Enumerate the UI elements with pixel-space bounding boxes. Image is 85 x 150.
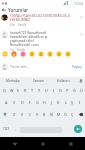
button[interactable]: Back [0,137,29,150]
staticText: L [65,100,67,105]
staticText: S [13,100,16,105]
button[interactable]: L [62,96,69,108]
button[interactable]: W [8,84,15,96]
button[interactable]: Ğ [71,84,78,96]
staticText: K [57,100,60,105]
button[interactable]: D [18,96,26,108]
button[interactable]: T [29,84,36,96]
button[interactable]: , [12,120,19,137]
staticText: Q [3,88,6,93]
staticText: R [24,88,27,93]
staticText: Y [38,88,41,93]
button[interactable]: Paylaş [71,64,83,70]
staticText: U [45,88,48,93]
button[interactable]: M [55,108,62,120]
button[interactable]: I [50,84,57,96]
button[interactable]: Emoji [9,50,18,58]
staticText: F [29,100,31,105]
staticText: Ç [71,112,74,117]
staticText: Dün Yanıtla [10,23,26,27]
staticText: Paylaş [72,65,82,69]
button[interactable]: Z [10,108,18,120]
staticText: P [66,88,69,93]
staticText: Kullanıcı [57,79,70,83]
button[interactable]: Kullanıcı [51,77,76,84]
button[interactable]: Back [0,6,7,13]
button[interactable]: H [41,96,48,108]
button[interactable]: Ü [78,84,85,96]
button[interactable]: U [43,84,50,96]
staticText: B [43,112,46,117]
button[interactable]: Emoji [18,50,27,58]
button[interactable]: Backspace [76,108,85,120]
button[interactable]: Like [78,14,84,20]
button[interactable]: E [15,84,22,96]
button[interactable]: Recents [57,137,85,150]
button[interactable]: Merhaba [0,77,26,84]
button[interactable]: Tamam [26,77,51,84]
button[interactable]: P [64,84,71,96]
button[interactable]: Shift [0,108,10,120]
staticText: , [15,126,16,131]
staticText: Yorum ekle... [10,65,30,69]
button[interactable]: Ö [62,108,69,120]
staticText: . [66,126,67,131]
button[interactable]: Emoji [63,50,72,58]
button[interactable]: K [55,96,62,108]
button[interactable]: B [41,108,48,120]
staticText: H [43,100,46,105]
staticText: Yorumlar [8,7,29,13]
button[interactable]: Send [74,125,82,133]
button[interactable]: Emoji [54,50,63,58]
button[interactable]: Q [0,84,8,96]
staticText: I [53,88,55,93]
staticText: Merhaba [6,79,20,83]
button[interactable]: X [18,108,26,120]
button[interactable]: Emoji [36,50,45,58]
button[interactable]: N [48,108,55,120]
button[interactable]: J [48,96,55,108]
button[interactable]: A [2,96,10,108]
button[interactable]: V [34,108,41,120]
button[interactable]: O [57,84,64,96]
staticText: G [36,100,39,105]
staticText: Ö [64,112,67,117]
staticText: I [79,100,81,105]
staticText: M [57,112,61,117]
staticText: O [59,88,62,93]
staticText: E [17,88,20,93]
staticText: J [51,100,53,105]
staticText: Ş [71,100,74,105]
button[interactable]: Emoji [0,50,9,58]
button[interactable]: Emoji [45,50,54,58]
button[interactable]: C [26,108,34,120]
staticText: A [5,100,8,105]
button[interactable]: I [76,96,83,108]
staticText: ?123 [3,127,10,131]
button[interactable]: G [34,96,41,108]
button[interactable]: F [26,96,34,108]
staticText: W [10,88,14,93]
button[interactable]: Y [36,84,43,96]
button[interactable]: Voice input [76,77,85,84]
button[interactable]: R [22,84,29,96]
staticText: hatice6723 Bonudhoodl hazardolan, albird… [10,31,51,47]
staticText: FUMALI PLAN BILGILI EDEBİ IREM GÜLÜ EDEB… [10,14,72,22]
staticText: Ğ [73,88,76,93]
staticText: V [36,112,39,117]
button[interactable]: Like [78,31,84,37]
button[interactable]: S [10,96,18,108]
staticText: 12:04 [74,1,83,6]
button[interactable]: Emoji [27,50,36,58]
staticText: C [29,112,32,117]
button[interactable]: ?123 [0,120,12,137]
staticText: 1sa Yanıtla [10,48,26,52]
button[interactable]: Home [29,137,57,150]
staticText: X [21,112,24,117]
staticText: N [50,112,53,117]
button[interactable]: Ç [69,108,76,120]
button[interactable]: Ş [69,96,76,108]
staticText: Tamam [33,79,45,83]
